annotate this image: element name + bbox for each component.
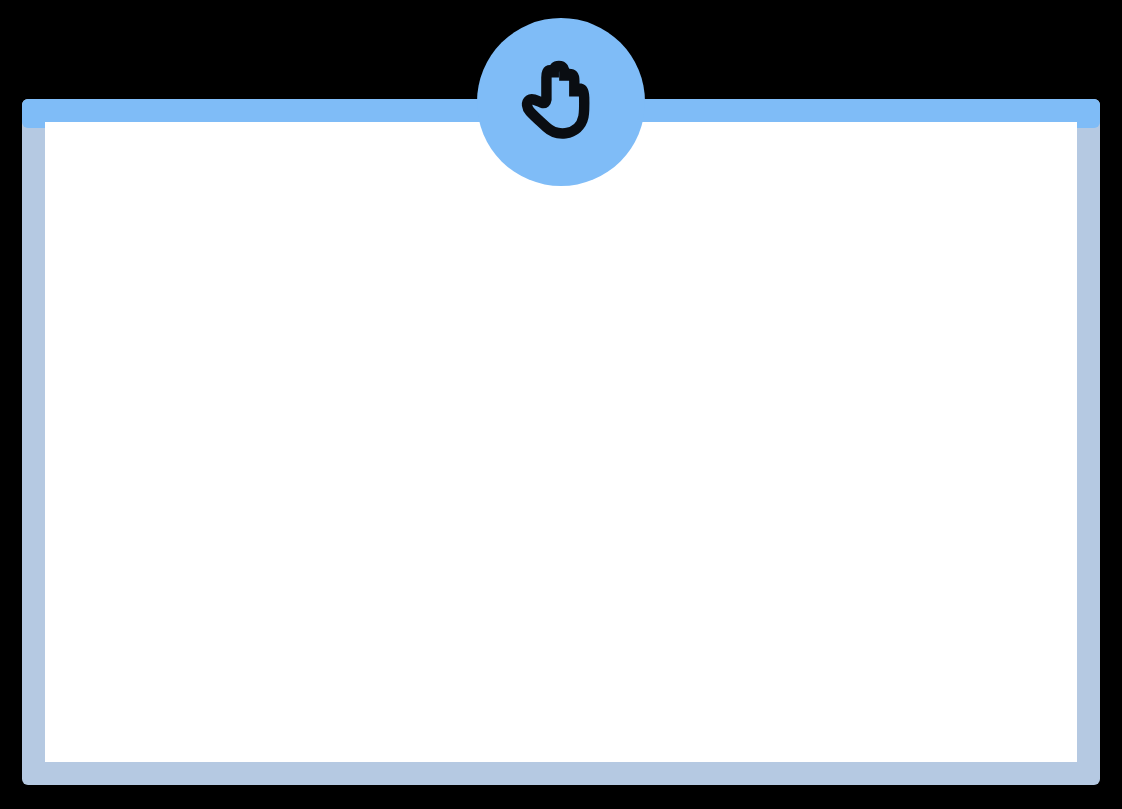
button[interactable]: Pan xyxy=(477,18,645,186)
